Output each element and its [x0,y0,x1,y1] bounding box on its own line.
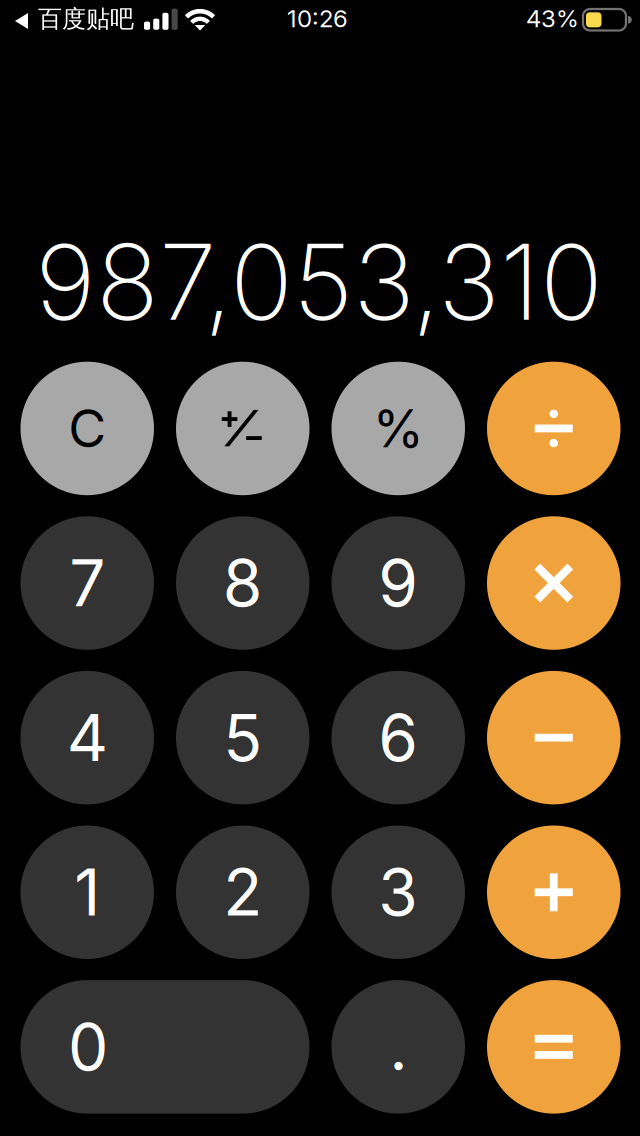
staticText: % [373,397,424,460]
button[interactable]: 9 [331,516,465,650]
staticText: 7 [69,544,105,622]
staticText: 43% [526,4,579,33]
staticText: 10:26 [287,4,348,33]
button[interactable]: Subtract [487,671,620,804]
staticText: 4 [67,699,108,776]
staticText: 1 [74,853,100,931]
button[interactable]: 0 [20,980,309,1114]
button[interactable]: Divide [487,362,620,495]
staticText: 9 [378,544,418,622]
staticText: 8 [223,544,263,622]
button[interactable]: 6 [331,671,465,804]
button[interactable]: Multiply [487,516,620,650]
staticText: 5 [223,699,262,776]
staticText: . [389,1008,407,1085]
staticText: 987,053,310 [35,219,603,345]
button[interactable]: Equals [487,980,620,1114]
button[interactable]: Add [487,825,620,959]
button[interactable]: 1 [20,825,154,959]
staticText: 百度贴吧 [38,4,134,34]
staticText: 6 [378,699,418,776]
button[interactable]: C [20,362,154,495]
button[interactable]: 3 [331,825,465,959]
staticText: C [68,397,106,460]
button[interactable]: 2 [176,825,309,959]
button[interactable]: 8 [176,516,309,650]
staticText: 0 [68,1008,108,1085]
button[interactable]: . [331,980,465,1114]
staticText: 3 [378,853,418,931]
button[interactable]: 5 [176,671,309,804]
button[interactable]: % [331,362,465,495]
button[interactable]: Toggle sign [176,362,309,495]
button[interactable]: 7 [20,516,154,650]
button[interactable]: 4 [20,671,154,804]
staticText: 2 [223,853,262,931]
